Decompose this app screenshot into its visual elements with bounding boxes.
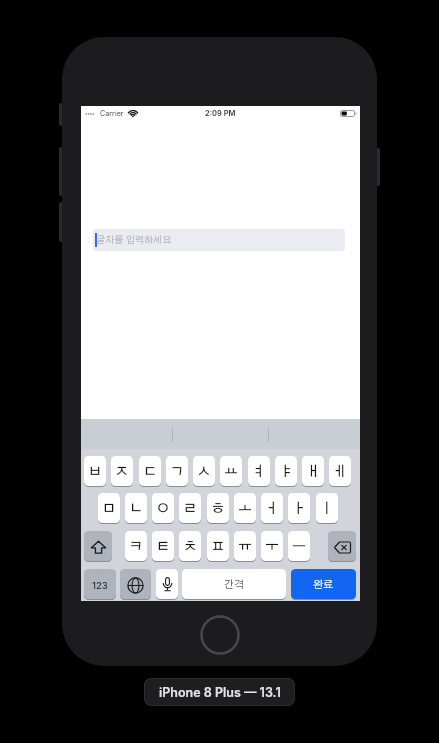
button[interactable]: ㄷ xyxy=(139,456,161,487)
button[interactable]: ㅣ xyxy=(316,493,338,524)
staticText: ㅋ xyxy=(129,540,143,554)
staticText: 완료 xyxy=(313,580,334,591)
button[interactable]: ㄹ xyxy=(179,493,201,524)
button[interactable] xyxy=(120,569,151,600)
staticText: ㄴ xyxy=(129,502,143,516)
button[interactable]: ㅛ xyxy=(220,456,242,487)
staticText: iPhone 8 Plus — 13.1 xyxy=(159,685,281,700)
button[interactable] xyxy=(156,569,178,600)
button[interactable]: ㅓ xyxy=(261,493,283,524)
button[interactable]: ㅗ xyxy=(234,493,256,524)
button[interactable]: 123 xyxy=(84,569,116,600)
button[interactable]: ㅅ xyxy=(193,456,215,487)
staticText: ㅎ xyxy=(211,502,225,516)
staticText: ㅈ xyxy=(115,465,129,479)
staticText: ㅐ xyxy=(306,465,320,479)
button[interactable]: ㅊ xyxy=(179,531,201,562)
staticText: ㅂ xyxy=(88,465,102,479)
button[interactable]: ㅁ xyxy=(98,493,120,524)
staticText: ㅔ xyxy=(333,465,347,479)
staticText: ㄹ xyxy=(183,502,197,516)
staticText: 글자를 입력하세요 xyxy=(96,235,172,245)
button[interactable]: ㅏ xyxy=(288,493,310,524)
button[interactable]: ㅑ xyxy=(275,456,297,487)
staticText: ㅇ xyxy=(156,502,170,516)
button[interactable]: ㅠ xyxy=(234,531,256,562)
staticText: ㅣ xyxy=(320,502,334,516)
button[interactable]: ㅇ xyxy=(152,493,174,524)
staticText: 간격 xyxy=(224,580,245,591)
button[interactable]: ㅔ xyxy=(329,456,351,487)
button[interactable] xyxy=(328,531,356,562)
staticText: ㅁ xyxy=(102,502,116,516)
button[interactable]: ㅎ xyxy=(207,493,229,524)
staticText: ㅑ xyxy=(279,465,293,479)
button[interactable]: ㅜ xyxy=(261,531,283,562)
button[interactable]: ㅂ xyxy=(84,456,106,487)
staticText: ㅕ xyxy=(252,465,266,479)
button[interactable] xyxy=(93,229,345,251)
staticText: ㅅ xyxy=(197,465,211,479)
button[interactable]: 완료 xyxy=(291,569,356,600)
staticText: ㅓ xyxy=(265,502,279,516)
button[interactable]: ㄱ xyxy=(166,456,188,487)
staticText: ㅊ xyxy=(183,540,197,554)
button[interactable]: ㅡ xyxy=(288,531,310,562)
staticText: ㅠ xyxy=(238,540,252,554)
button[interactable]: ㄴ xyxy=(125,493,147,524)
button[interactable]: ㅕ xyxy=(248,456,270,487)
button[interactable]: ㅌ xyxy=(152,531,174,562)
button[interactable]: ㅍ xyxy=(207,531,229,562)
button[interactable]: 간격 xyxy=(182,569,286,600)
staticText: Carrier xyxy=(100,109,124,118)
staticText: ㅛ xyxy=(224,465,238,479)
staticText: ㄱ xyxy=(170,465,184,479)
staticText: 123 xyxy=(92,580,108,591)
staticText: ㅏ xyxy=(292,502,306,516)
button[interactable]: ㅈ xyxy=(111,456,133,487)
staticText: ㅍ xyxy=(211,540,225,554)
button[interactable]: iPhone 8 Plus — 13.1 xyxy=(144,678,295,706)
staticText: ㅡ xyxy=(292,540,306,554)
staticText: ㅜ xyxy=(265,540,279,554)
staticText: ㄷ xyxy=(143,465,157,479)
button[interactable] xyxy=(84,531,112,562)
button[interactable]: ㅋ xyxy=(125,531,147,562)
button[interactable]: ㅐ xyxy=(302,456,324,487)
staticText: ㅗ xyxy=(238,502,252,516)
staticText: 2:09 PM xyxy=(205,109,236,118)
staticText: ㅌ xyxy=(156,540,170,554)
